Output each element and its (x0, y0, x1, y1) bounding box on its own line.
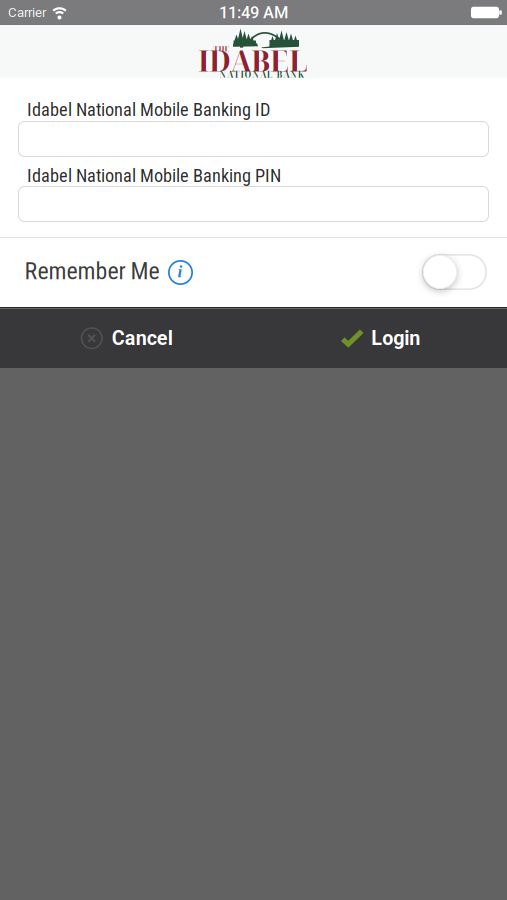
staticText: Cancel (112, 327, 173, 350)
button[interactable]: Idabel National Mobile Banking PIN (18, 186, 489, 222)
staticText: NATIONAL BANK (219, 69, 304, 80)
staticText: Idabel National Mobile Banking ID (27, 99, 270, 120)
staticText: Carrier (8, 5, 46, 20)
staticText: Login (371, 327, 420, 350)
staticText: i (177, 262, 182, 281)
button[interactable]: Login (253, 308, 507, 368)
staticText: IDABEL (198, 41, 308, 80)
button[interactable]: About Remember Me (168, 260, 193, 285)
staticText: Idabel National Mobile Banking PIN (27, 165, 281, 186)
staticText: THE (213, 43, 229, 53)
button[interactable]: Cancel (0, 308, 253, 368)
button[interactable]: Idabel National Mobile Banking ID (18, 121, 489, 157)
staticText: Remember Me (24, 257, 159, 285)
staticText: 11:49 AM (219, 3, 288, 22)
button[interactable]: Remember Me (422, 254, 487, 290)
